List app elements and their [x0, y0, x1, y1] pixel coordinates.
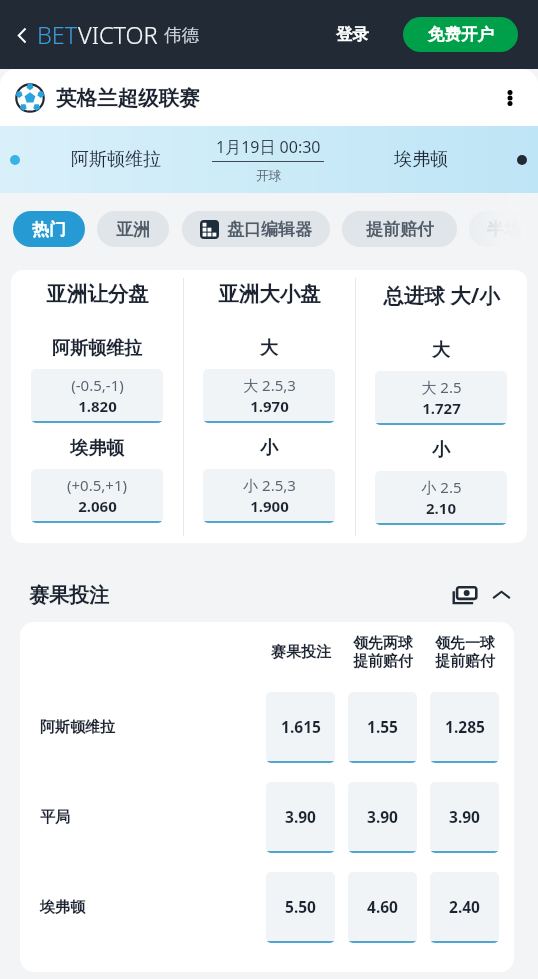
staticText: 赛果投注: [271, 643, 331, 662]
staticText: 4.60: [367, 896, 398, 917]
button[interactable]: (-0.5,-1): [31, 369, 163, 423]
button[interactable]: 1.615: [266, 692, 335, 763]
staticText: 盘口编辑器: [227, 219, 312, 240]
staticText: 2.10: [426, 498, 456, 518]
staticText: 埃弗顿: [40, 898, 85, 917]
button[interactable]: 提前赔付: [342, 211, 457, 247]
staticText: 阿斯顿维拉: [71, 148, 161, 171]
staticText: 热门: [32, 219, 66, 240]
staticText: 3.90: [285, 806, 316, 827]
staticText: 登录: [336, 24, 369, 45]
staticText: 大: [260, 337, 278, 360]
staticText: BET: [37, 19, 78, 51]
button[interactable]: 4.60: [348, 872, 417, 943]
staticText: 1.615: [281, 716, 321, 737]
button[interactable]: 5.50: [266, 872, 335, 943]
staticText: 小 2.5,3: [243, 475, 296, 495]
staticText: 埃弗顿: [70, 437, 124, 460]
button[interactable]: 3.90: [266, 782, 335, 853]
staticText: 亚洲大小盘: [218, 281, 321, 307]
staticText: 大: [432, 339, 450, 362]
button[interactable]: 半场: [469, 211, 538, 247]
staticText: 英格兰超级联赛: [56, 85, 200, 111]
button[interactable]: (+0.5,+1): [31, 469, 163, 523]
staticText: 亚洲: [116, 219, 150, 240]
staticText: 领先一球 提前赔付: [435, 634, 495, 670]
staticText: 免费开户: [428, 24, 494, 45]
staticText: 大 2.5: [421, 377, 462, 397]
button[interactable]: 热门: [13, 211, 85, 247]
button[interactable]: 1.285: [430, 692, 499, 763]
staticText: 1.820: [78, 396, 117, 416]
staticText: 1.727: [422, 398, 461, 418]
staticText: 阿斯顿维拉: [52, 337, 142, 360]
staticText: 伟德: [164, 24, 199, 46]
button[interactable]: 免费开户: [403, 17, 518, 52]
staticText: 小: [260, 437, 278, 460]
staticText: 1.55: [367, 716, 398, 737]
staticText: 小 2.5: [421, 477, 462, 497]
staticText: (+0.5,+1): [67, 475, 127, 495]
button[interactable]: 2.40: [430, 872, 499, 943]
staticText: 阿斯顿维拉: [40, 718, 115, 737]
staticText: 1.285: [445, 716, 485, 737]
button[interactable]: 大 2.5: [375, 371, 507, 425]
staticText: 半场: [487, 219, 521, 240]
button[interactable]: 3.90: [348, 782, 417, 853]
button[interactable]: Back: [7, 20, 37, 50]
button[interactable]: 大 2.5,3: [203, 369, 335, 423]
button[interactable]: 小 2.5: [375, 471, 507, 525]
staticText: 3.90: [367, 806, 398, 827]
staticText: 小: [432, 439, 450, 462]
staticText: 大 2.5,3: [243, 375, 296, 395]
button[interactable]: 1.55: [348, 692, 417, 763]
button[interactable]: Collapse: [486, 580, 516, 610]
staticText: 平局: [40, 808, 70, 827]
staticText: 1.970: [250, 396, 289, 416]
button[interactable]: More options: [496, 84, 524, 112]
staticText: (-0.5,-1): [71, 375, 124, 395]
staticText: 1月19日 00:30: [216, 136, 321, 158]
staticText: 总进球 大/小: [383, 281, 500, 309]
staticText: 埃弗顿: [394, 148, 448, 171]
button[interactable]: 小 2.5,3: [203, 469, 335, 523]
button[interactable]: Cash out: [450, 580, 480, 610]
staticText: 领先两球 提前赔付: [353, 634, 413, 670]
button[interactable]: 3.90: [430, 782, 499, 853]
staticText: 1.900: [250, 496, 289, 516]
button[interactable]: 登录: [328, 17, 377, 52]
button[interactable]: 盘口编辑器: [182, 211, 330, 247]
staticText: 2.060: [78, 496, 117, 516]
staticText: 5.50: [285, 896, 316, 917]
button[interactable]: 亚洲: [97, 211, 169, 247]
staticText: 亚洲让分盘: [46, 281, 149, 307]
staticText: 赛果投注: [29, 583, 109, 608]
button[interactable]: 阿斯顿维拉: [0, 126, 538, 193]
staticText: 提前赔付: [366, 219, 434, 240]
staticText: 开球: [256, 168, 281, 184]
staticText: 2.40: [449, 896, 480, 917]
staticText: VICTOR: [78, 19, 158, 51]
staticText: 3.90: [449, 806, 480, 827]
